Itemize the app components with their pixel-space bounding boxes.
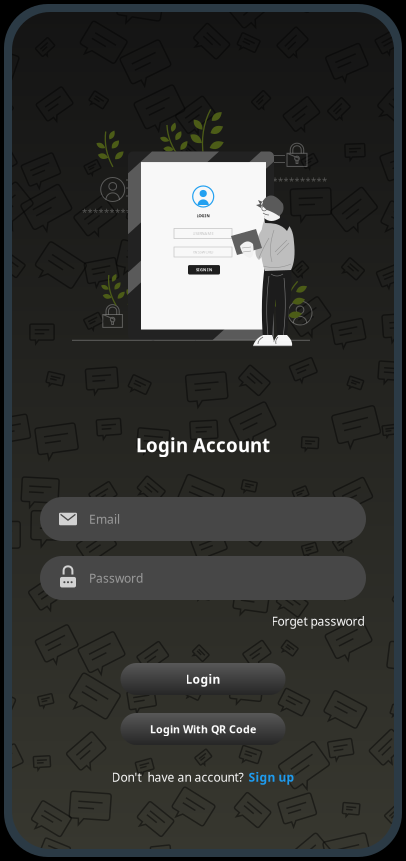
button[interactable]: Login With QR Code <box>120 713 285 745</box>
staticText: Forget password <box>271 613 364 629</box>
staticText: * <box>283 175 288 187</box>
staticText: * <box>82 206 87 218</box>
staticText: * <box>272 175 277 187</box>
staticText: Email <box>89 511 120 527</box>
staticText: * <box>294 175 299 187</box>
staticText: * <box>311 175 316 187</box>
staticText: PASSWORD <box>192 249 213 255</box>
staticText: * <box>305 175 310 187</box>
staticText: USERNAME <box>192 231 213 236</box>
staticText: Password <box>89 570 143 586</box>
staticText: * <box>137 206 142 218</box>
staticText: * <box>322 175 327 187</box>
button[interactable]: Forget password <box>268 610 367 632</box>
staticText: * <box>115 206 120 218</box>
staticText: * <box>93 206 98 218</box>
staticText: * <box>316 175 321 187</box>
staticText: * <box>109 206 114 218</box>
staticText: SIGN IN <box>196 267 212 272</box>
button[interactable]: Login <box>120 663 285 695</box>
staticText: Don't have an account? <box>111 769 243 785</box>
staticText: * <box>98 206 103 218</box>
button[interactable]: Sign up <box>248 769 294 785</box>
staticText: Login With QR Code <box>150 722 256 736</box>
staticText: * <box>300 175 305 187</box>
staticText: Login Account <box>136 433 270 457</box>
staticText: * <box>126 206 131 218</box>
staticText: * <box>104 206 109 218</box>
staticText: Sign up <box>248 769 294 785</box>
staticText: * <box>87 206 92 218</box>
staticText: * <box>120 206 125 218</box>
staticText: LOGIN <box>196 213 209 218</box>
staticText: Login <box>185 671 220 687</box>
staticText: * <box>289 175 294 187</box>
staticText: * <box>278 175 283 187</box>
